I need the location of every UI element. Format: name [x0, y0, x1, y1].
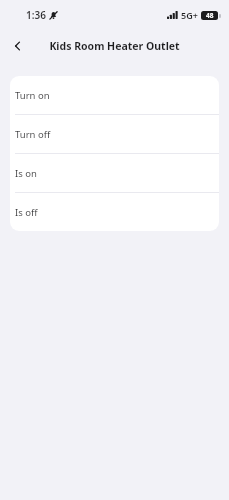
button[interactable]: Turn on	[10, 76, 219, 114]
button[interactable]: Turn off	[10, 115, 219, 153]
staticText: Turn off	[15, 128, 51, 141]
staticText: Is off	[15, 206, 38, 219]
staticText: Is on	[15, 167, 37, 180]
staticText: 48	[206, 11, 214, 20]
staticText: Kids Room Heater Outlet	[49, 39, 180, 53]
button[interactable]: Back	[4, 32, 32, 60]
staticText: 5G+	[181, 9, 198, 21]
button[interactable]: Is off	[10, 193, 219, 231]
staticText: Turn on	[15, 89, 50, 102]
button[interactable]: Is on	[10, 154, 219, 192]
staticText: 1:36	[26, 8, 46, 22]
